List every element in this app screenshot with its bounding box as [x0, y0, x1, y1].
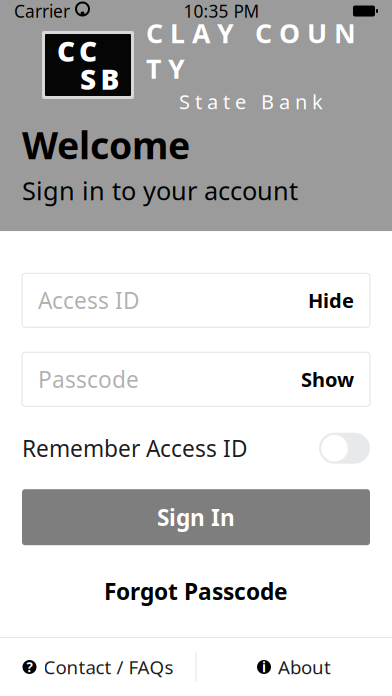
staticText: Remember Access ID — [22, 433, 248, 463]
staticText: C L A Y C O U N T Y — [146, 15, 356, 86]
button[interactable]: ? — [0, 638, 195, 696]
staticText: 10:35 PM — [183, 0, 259, 22]
staticText: Welcome — [22, 120, 190, 170]
staticText: B — [100, 60, 119, 98]
staticText: Sign In — [157, 502, 235, 532]
staticText: Contact / FAQs — [43, 655, 173, 679]
staticText: Carrier — [14, 0, 70, 22]
button[interactable]: Remember Access ID — [22, 432, 370, 464]
staticText: Hide — [308, 287, 354, 313]
staticText: Access ID — [38, 285, 140, 315]
staticText: Show — [301, 366, 354, 392]
staticText: C — [79, 32, 97, 70]
staticText: S — [80, 60, 96, 98]
staticText: C — [57, 32, 75, 70]
button[interactable]: i — [196, 638, 391, 696]
button[interactable]: Access ID — [22, 273, 370, 327]
button[interactable]: Forgot Passcode — [22, 569, 370, 613]
staticText: S t a t e B a n k — [179, 88, 323, 115]
staticText: Forgot Passcode — [104, 576, 288, 606]
staticText: i — [262, 658, 266, 676]
button[interactable]: Passcode — [22, 352, 370, 406]
staticText: About — [278, 655, 331, 679]
staticText: ? — [26, 658, 32, 676]
staticText: Sign in to your account — [22, 174, 298, 207]
button[interactable]: Sign In — [22, 489, 370, 545]
staticText: Passcode — [38, 364, 139, 394]
